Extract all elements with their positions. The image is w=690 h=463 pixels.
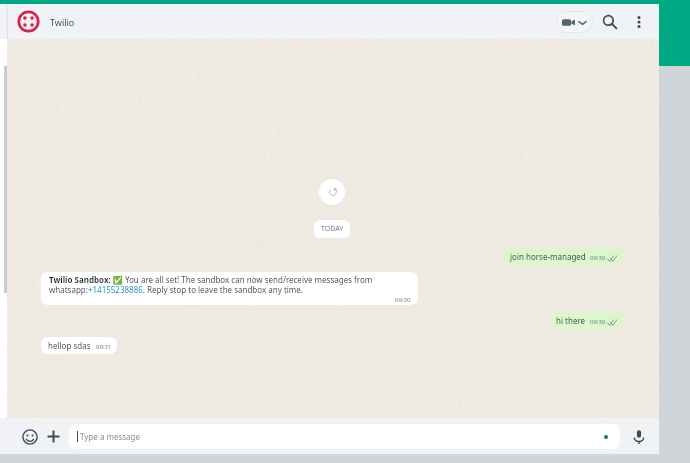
button[interactable]: Voice message	[627, 425, 650, 448]
button[interactable]: join horse-managed	[504, 248, 622, 265]
staticText: Twilio Sandbox: ✅ You are all set! The s…	[49, 274, 411, 296]
staticText: hi there	[556, 315, 586, 326]
button[interactable]: Twilio Sandbox: ✅ You are all set! The s…	[41, 272, 418, 305]
button[interactable]: Menu	[626, 9, 652, 35]
staticText: 09:30	[590, 254, 606, 262]
button[interactable]: Search	[597, 9, 623, 35]
staticText: 09:30	[590, 318, 606, 326]
staticText: hellop sdas	[48, 340, 91, 351]
button[interactable]: Attach	[42, 425, 65, 448]
staticText: Type a message	[80, 431, 141, 442]
staticText: Twilio	[50, 16, 75, 28]
button[interactable]: Emoji	[18, 425, 41, 448]
button[interactable]: Video call	[556, 11, 593, 33]
button[interactable]: TODAY	[314, 220, 350, 238]
button[interactable]: Type a message	[69, 424, 620, 449]
button[interactable]: Twilio	[17, 4, 75, 39]
staticText: join horse-managed	[510, 251, 586, 262]
staticText: 09:30	[395, 296, 411, 304]
button[interactable]: hi there	[550, 312, 622, 329]
staticText: TODAY	[321, 224, 344, 234]
button[interactable]: hellop sdas	[41, 337, 117, 354]
staticText: 09:31	[96, 343, 112, 351]
button[interactable]: Loading	[319, 179, 345, 205]
